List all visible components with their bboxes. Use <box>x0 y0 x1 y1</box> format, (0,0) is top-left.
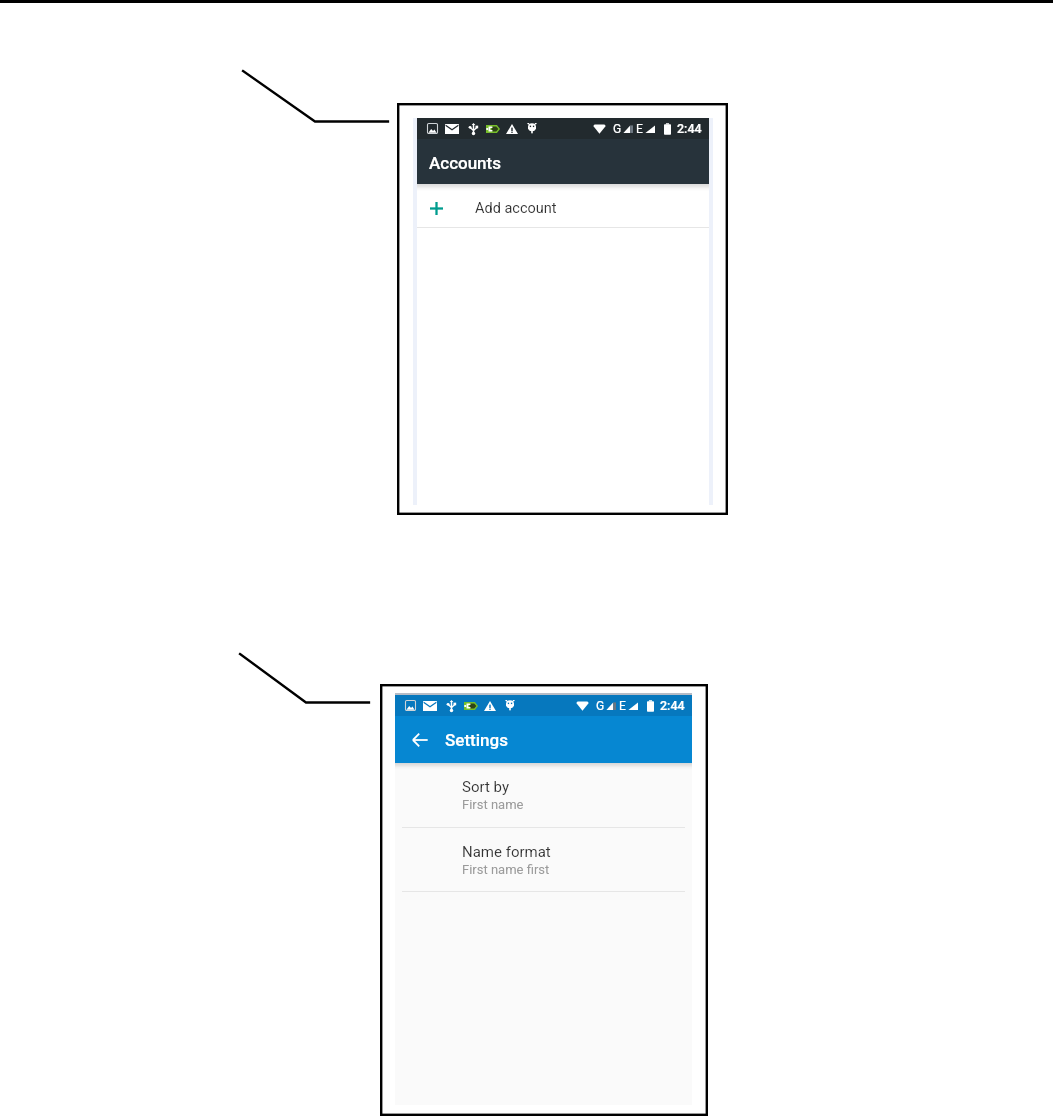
button[interactable]: Back <box>395 716 445 763</box>
staticText: Sort by <box>462 778 509 796</box>
staticText: Settings <box>445 730 508 750</box>
staticText: G <box>596 699 605 713</box>
staticText: G <box>613 122 622 136</box>
staticText: E <box>636 122 643 136</box>
staticText: E <box>619 699 626 713</box>
button[interactable]: Name format <box>395 828 692 891</box>
staticText: Name format <box>462 843 551 861</box>
staticText: 2:44 <box>677 121 702 136</box>
staticText: Accounts <box>429 153 501 173</box>
staticText: First name <box>462 797 524 812</box>
staticText: 2:44 <box>660 698 685 713</box>
staticText: Add account <box>475 200 557 217</box>
staticText: First name first <box>462 862 550 877</box>
button[interactable]: Sort by <box>395 763 692 827</box>
button[interactable]: Add account <box>417 184 709 227</box>
